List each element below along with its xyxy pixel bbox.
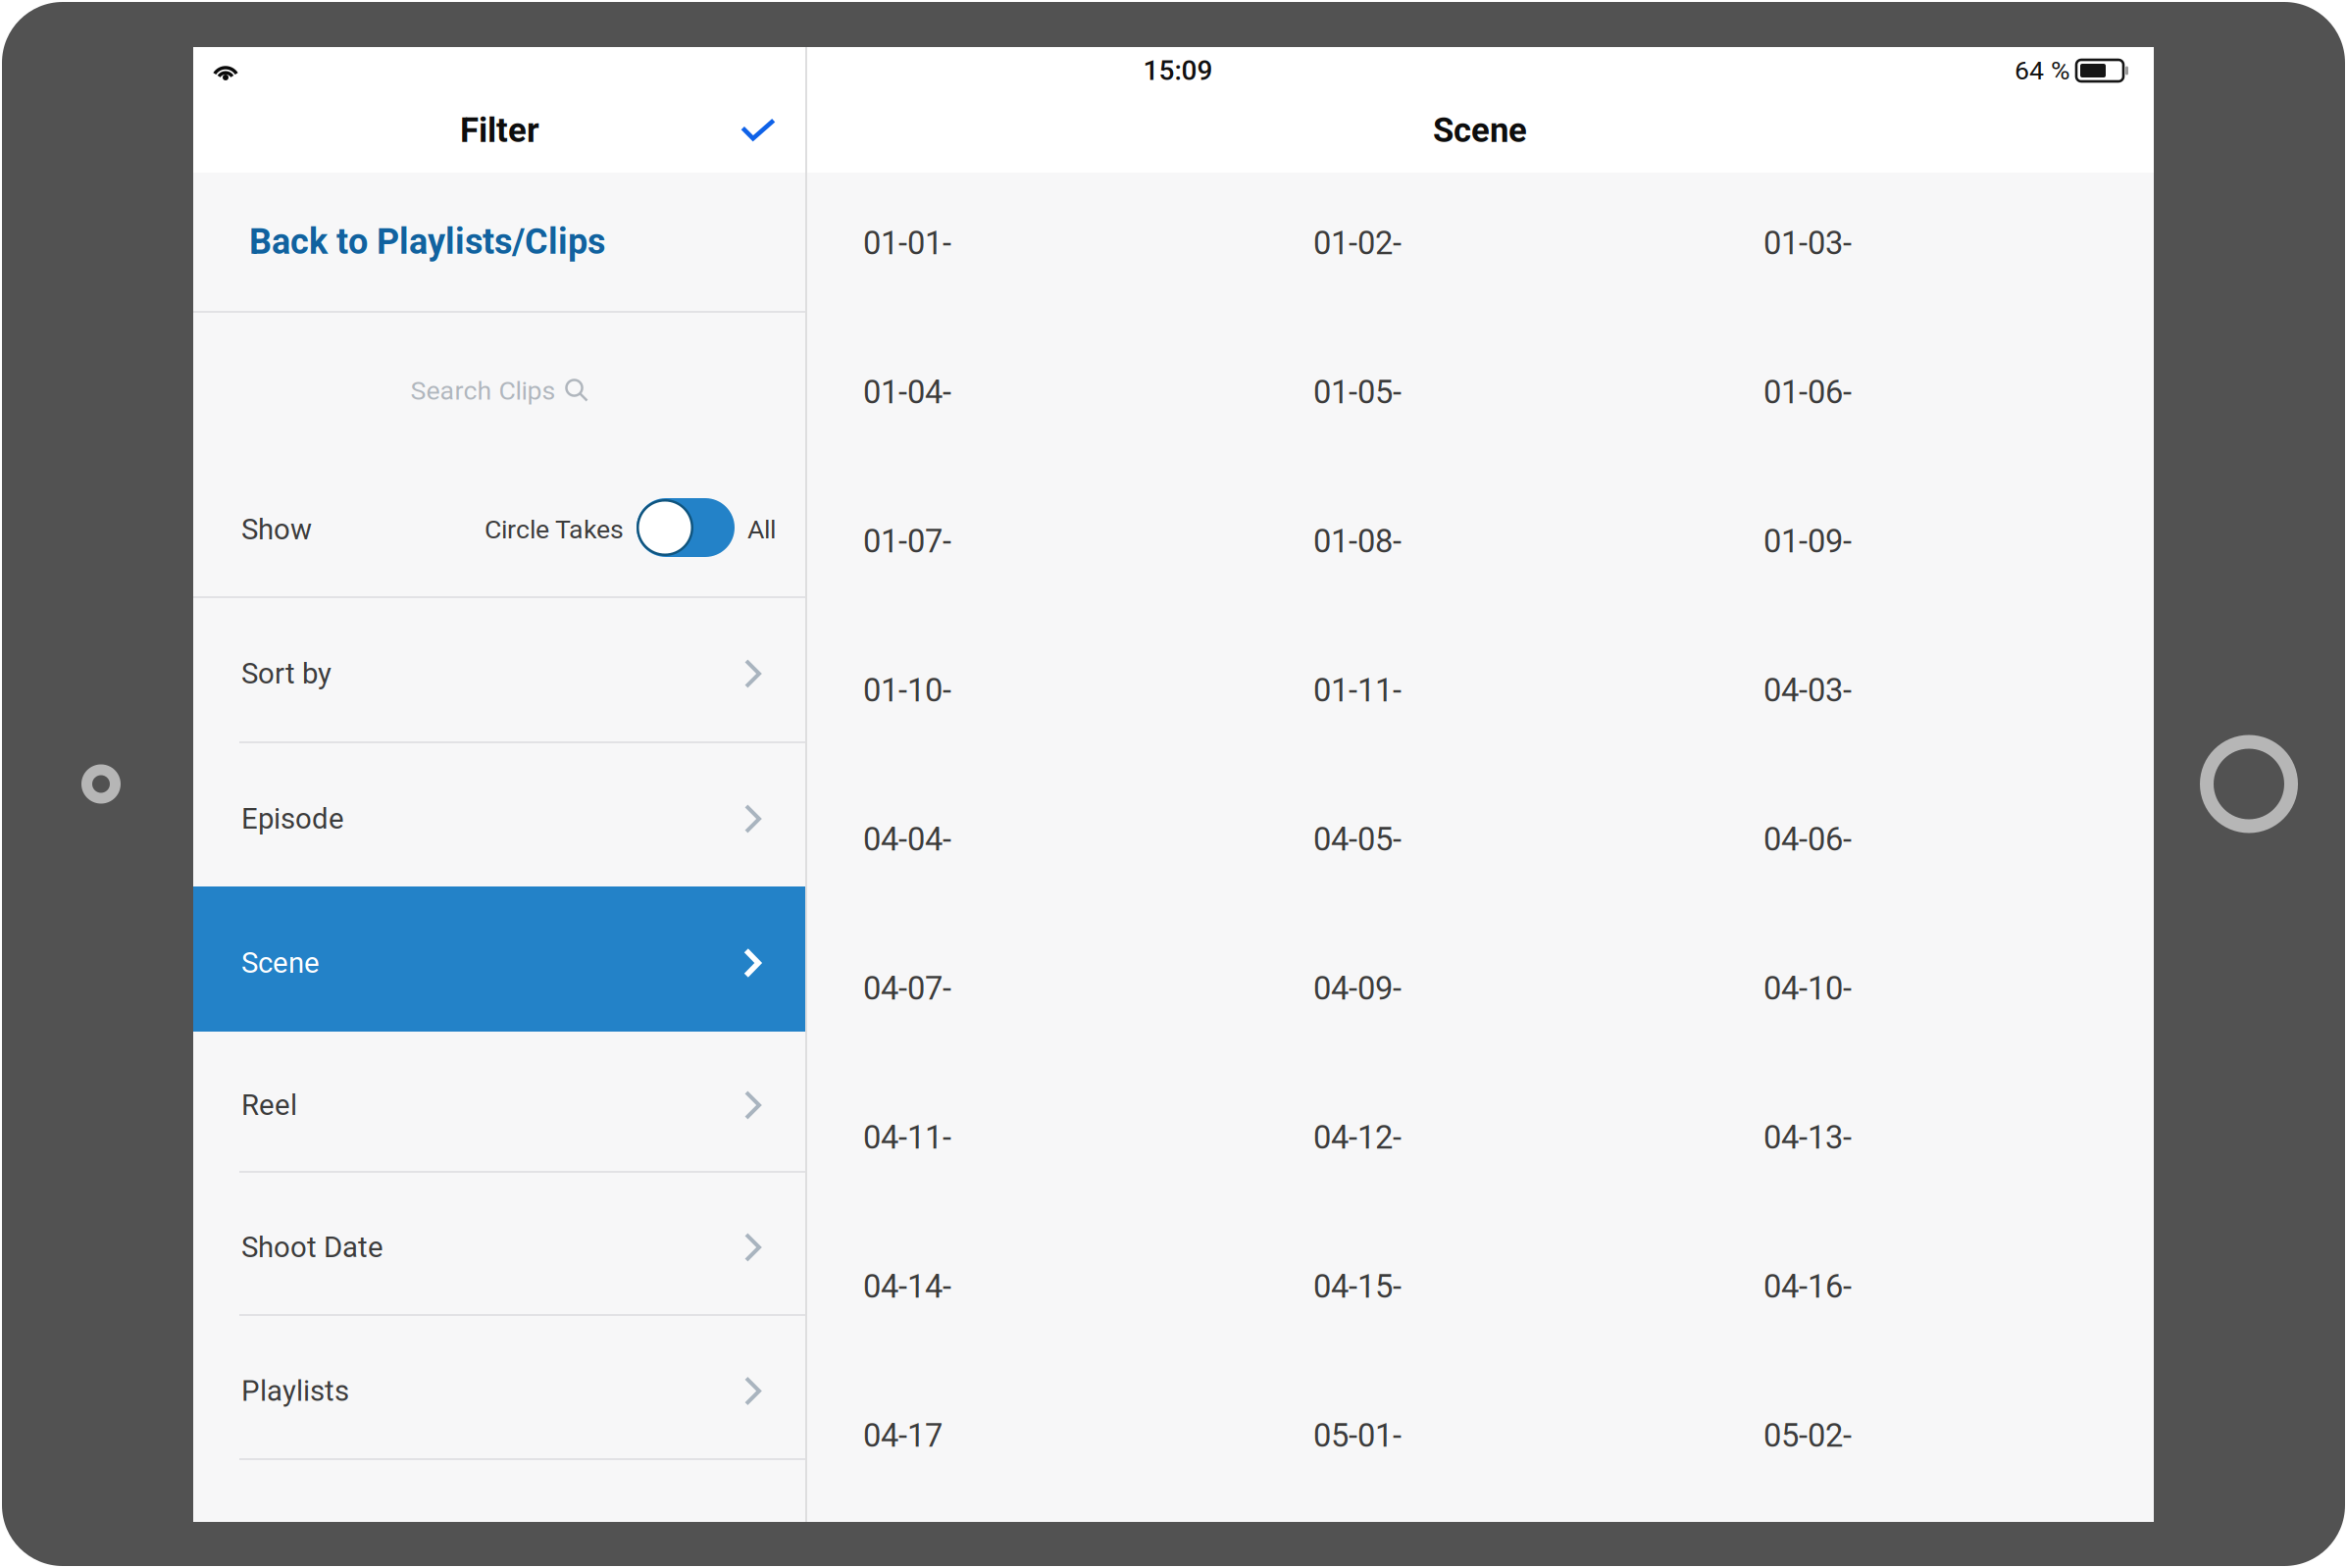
button[interactable]: Back to Playlists/Clips	[193, 173, 806, 311]
staticText: 04-15-	[1313, 1268, 1402, 1305]
button[interactable]: 04-11-	[863, 1063, 1313, 1212]
button[interactable]: 01-03-	[1763, 169, 2154, 318]
button[interactable]: 04-12-	[1313, 1063, 1763, 1212]
button[interactable]: Playlists	[193, 1316, 806, 1458]
staticText: Episode	[241, 802, 344, 836]
button[interactable]: 04-06-	[1763, 765, 2154, 914]
staticText: 04-06-	[1763, 821, 1852, 858]
staticText: 15:09	[1143, 55, 1213, 87]
staticText: 04-16-	[1763, 1268, 1852, 1305]
staticText: 05-01-	[1313, 1417, 1402, 1454]
button[interactable]: 04-07-	[863, 914, 1313, 1063]
staticText: Playlists	[241, 1374, 349, 1408]
button[interactable]: 04-04-	[863, 765, 1313, 914]
button[interactable]: 04-13-	[1763, 1063, 2154, 1212]
button[interactable]: Scene	[193, 886, 806, 1032]
staticText: All	[747, 514, 776, 545]
button[interactable]: 04-03-	[1763, 616, 2154, 765]
button[interactable]: 04-15-	[1313, 1212, 1763, 1361]
staticText: 01-11-	[1313, 672, 1402, 709]
button[interactable]: 01-10-	[863, 616, 1313, 765]
staticText: 04-03-	[1763, 672, 1852, 709]
staticText: 04-17	[863, 1417, 943, 1454]
button[interactable]: Episode	[193, 743, 806, 886]
staticText: 04-10-	[1763, 970, 1852, 1007]
button[interactable]: 04-09-	[1313, 914, 1763, 1063]
staticText: 04-09-	[1313, 970, 1402, 1007]
staticText: 64 %	[2015, 55, 2070, 86]
staticText: Shoot Date	[241, 1230, 383, 1264]
staticText: Show	[241, 513, 312, 546]
staticText: 01-10-	[863, 672, 951, 709]
staticText: Scene	[241, 946, 320, 980]
button[interactable]: 01-08-	[1313, 467, 1763, 616]
button[interactable]: 04-14-	[863, 1212, 1313, 1361]
staticText: 01-01-	[863, 224, 951, 262]
staticText: Circle Takes	[485, 514, 624, 545]
button[interactable]: 01-11-	[1313, 616, 1763, 765]
button[interactable]: Shoot Date	[193, 1173, 806, 1314]
staticText: Filter	[460, 111, 539, 150]
staticText: 01-04-	[863, 374, 951, 411]
button[interactable]: 01-01-	[863, 169, 1313, 318]
staticText: Back to Playlists/Clips	[249, 221, 605, 262]
staticText: 01-03-	[1763, 224, 1852, 262]
staticText: 04-04-	[863, 821, 951, 858]
staticText: 04-11-	[863, 1119, 951, 1156]
staticText: 04-12-	[1313, 1119, 1402, 1156]
button[interactable]: Reel	[193, 1032, 806, 1171]
staticText: 01-06-	[1763, 374, 1852, 411]
staticText: Scene	[1433, 111, 1527, 150]
staticText: Reel	[241, 1088, 297, 1122]
staticText: 01-08-	[1313, 523, 1402, 560]
button[interactable]: Apply filter	[724, 101, 792, 163]
button[interactable]: Search Clips	[193, 313, 806, 455]
button[interactable]: 01-09-	[1763, 467, 2154, 616]
staticText: Search Clips	[410, 375, 556, 406]
staticText: 04-13-	[1763, 1119, 1852, 1156]
button[interactable]: 04-17	[863, 1361, 1313, 1510]
staticText: 01-09-	[1763, 523, 1852, 560]
staticText: 01-02-	[1313, 224, 1402, 262]
staticText: 01-05-	[1313, 374, 1402, 411]
staticText: 04-14-	[863, 1268, 951, 1305]
button[interactable]: 01-06-	[1763, 318, 2154, 467]
button[interactable]: 01-04-	[863, 318, 1313, 467]
staticText: 01-07-	[863, 523, 951, 560]
staticText: 05-02-	[1763, 1417, 1852, 1454]
staticText: 04-05-	[1313, 821, 1402, 858]
button[interactable]: 05-01-	[1313, 1361, 1763, 1510]
staticText: Sort by	[241, 657, 332, 691]
button[interactable]: 04-16-	[1763, 1212, 2154, 1361]
button[interactable]: 01-02-	[1313, 169, 1763, 318]
button[interactable]: Circle takes toggle	[637, 490, 735, 561]
button[interactable]: 04-10-	[1763, 914, 2154, 1063]
staticText: 04-07-	[863, 970, 951, 1007]
button[interactable]: 01-07-	[863, 467, 1313, 616]
button[interactable]: 04-05-	[1313, 765, 1763, 914]
button[interactable]: 01-05-	[1313, 318, 1763, 467]
button[interactable]: 05-02-	[1763, 1361, 2154, 1510]
button[interactable]: Sort by	[193, 598, 806, 741]
